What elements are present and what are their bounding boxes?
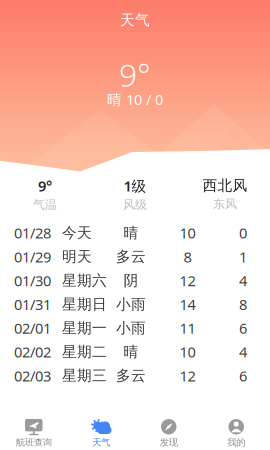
button[interactable]: 01/30 — [0, 269, 270, 292]
staticText: 多云 — [116, 248, 146, 266]
staticText: 6 — [239, 366, 247, 385]
button[interactable]: 02/01 — [0, 316, 270, 340]
staticText: 4 — [239, 342, 247, 362]
staticText: 0 — [239, 223, 247, 243]
staticText: 今天 — [62, 224, 92, 242]
staticText: 10 — [179, 342, 195, 362]
staticText: 星期六 — [62, 271, 107, 289]
staticText: 9° — [119, 53, 151, 95]
staticText: 天气 — [120, 11, 150, 29]
staticText: 我的 — [227, 437, 245, 448]
staticText: 风级 — [123, 197, 147, 212]
staticText: 02/03 — [14, 366, 51, 385]
staticText: 星期一 — [62, 319, 107, 337]
staticText: 14 — [179, 295, 195, 314]
button[interactable]: 01/31 — [0, 292, 270, 316]
staticText: 10 — [179, 223, 195, 243]
button[interactable]: 天气 — [100, 12, 170, 28]
staticText: 9° — [38, 176, 52, 195]
staticText: 12 — [179, 366, 195, 385]
staticText: 星期三 — [62, 367, 107, 385]
staticText: 12 — [179, 271, 195, 290]
staticText: 02/01 — [14, 318, 51, 338]
staticText: 东风 — [213, 197, 237, 211]
staticText: 发现 — [160, 437, 178, 448]
staticText: 晴 — [123, 224, 138, 242]
staticText: 星期日 — [62, 295, 107, 313]
staticText: 01/29 — [14, 247, 51, 266]
staticText: 11 — [179, 318, 195, 338]
button[interactable]: 02/02 — [0, 340, 270, 364]
staticText: 晴 10 / 0 — [107, 89, 163, 109]
staticText: 明天 — [62, 248, 92, 266]
staticText: 1级 — [123, 176, 146, 195]
button[interactable]: 发现 — [135, 400, 202, 450]
button[interactable]: 我的 — [202, 400, 270, 450]
staticText: 1 — [239, 247, 247, 266]
staticText: 8 — [183, 247, 191, 266]
button[interactable]: 天气 — [67, 400, 135, 450]
staticText: 航班查询 — [16, 437, 52, 448]
button[interactable]: 航班查询 — [0, 400, 67, 450]
staticText: 4 — [239, 271, 247, 290]
staticText: 多云 — [116, 367, 146, 385]
staticText: 小雨 — [116, 295, 146, 313]
staticText: 6 — [239, 318, 247, 338]
button[interactable]: 02/03 — [0, 364, 270, 388]
staticText: 02/02 — [14, 342, 51, 362]
staticText: 天气 — [92, 437, 110, 448]
staticText: 01/28 — [14, 223, 51, 243]
staticText: 小雨 — [116, 319, 146, 337]
button[interactable]: 01/28 — [0, 221, 270, 245]
staticText: 8 — [239, 295, 247, 314]
button[interactable]: 01/29 — [0, 245, 270, 269]
staticText: 西北风 — [202, 177, 247, 195]
staticText: 01/30 — [14, 271, 51, 290]
staticText: 01/31 — [14, 295, 51, 314]
staticText: 晴 — [123, 343, 138, 361]
staticText: 阴 — [123, 271, 138, 289]
staticText: 星期二 — [62, 343, 107, 361]
staticText: 气温 — [33, 197, 57, 212]
